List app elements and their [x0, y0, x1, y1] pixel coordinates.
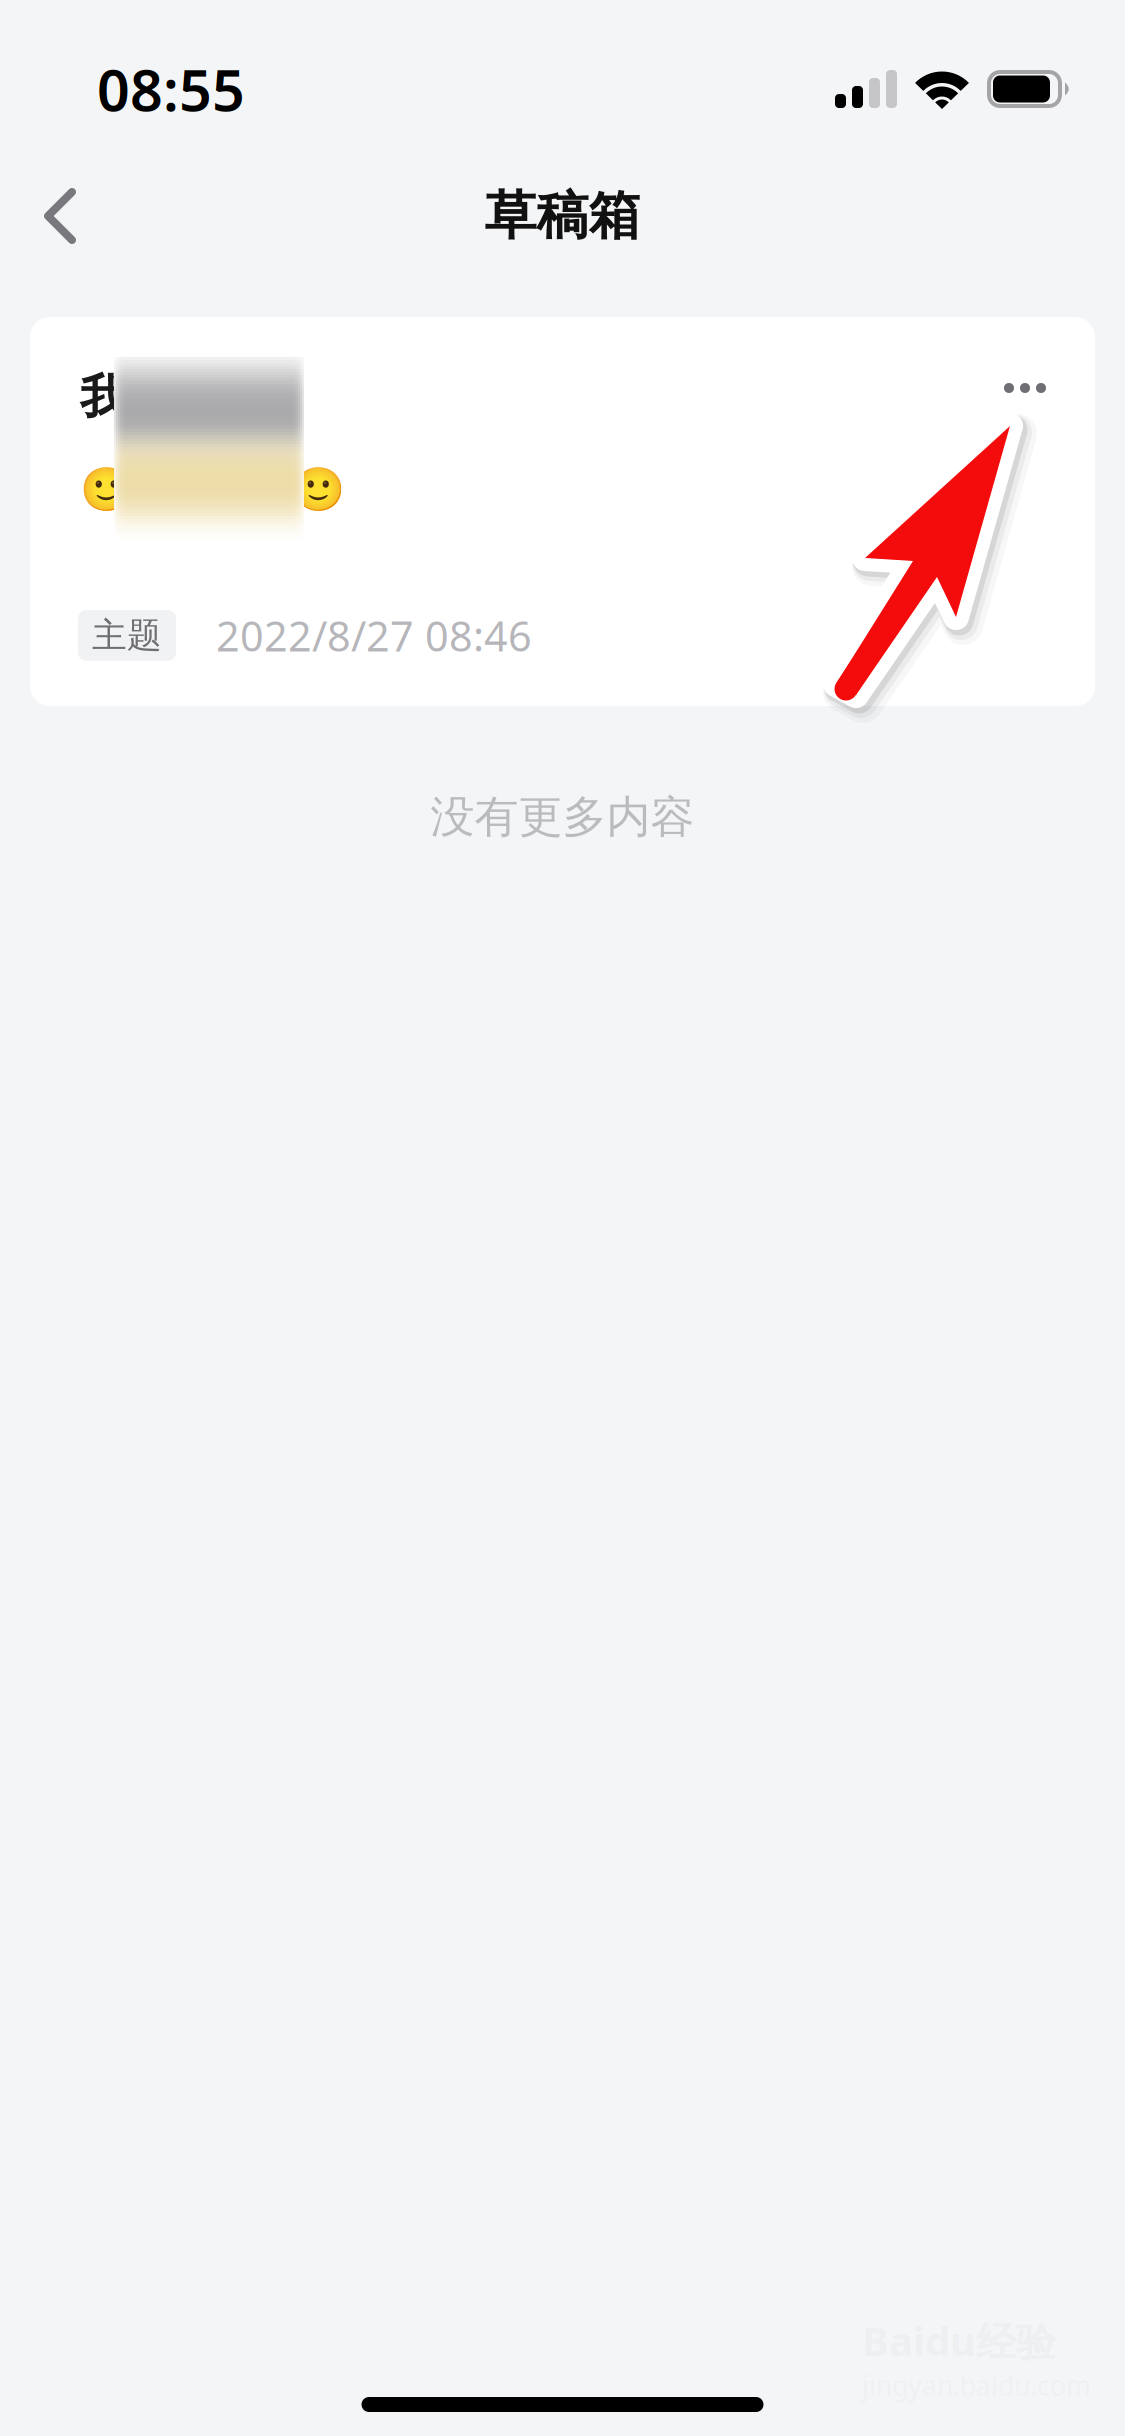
staticText: 我的草 [80, 368, 224, 427]
staticText: 没有更多内容 [430, 790, 694, 844]
staticText: 主题 [92, 614, 162, 657]
staticText: 草稿箱 [484, 184, 640, 248]
staticText: 🙂🙂🙂🙂🙂 [80, 465, 345, 514]
button[interactable]: More options [980, 350, 1070, 426]
staticText: 08:55 [97, 51, 245, 127]
button[interactable]: Back [0, 162, 112, 270]
staticText: 2022/8/27 08:46 [216, 608, 532, 663]
